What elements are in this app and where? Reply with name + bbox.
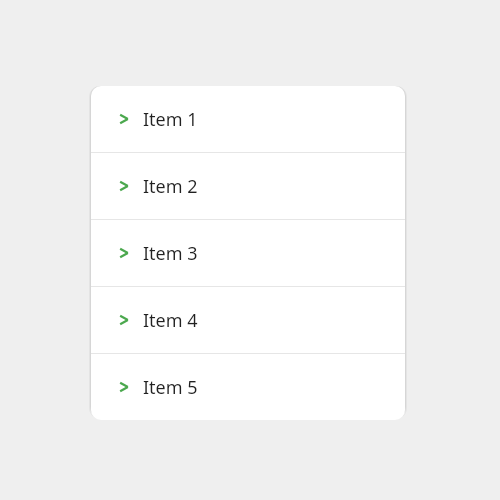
button[interactable]: Item 3: [91, 220, 405, 286]
button[interactable]: Item 4: [91, 287, 405, 353]
button[interactable]: Item 2: [91, 153, 405, 219]
button[interactable]: Item 5: [91, 354, 405, 420]
staticText: Item 1: [143, 107, 198, 132]
staticText: Item 2: [143, 174, 198, 199]
staticText: Item 5: [143, 375, 198, 400]
staticText: Item 4: [143, 308, 198, 333]
staticText: Item 3: [143, 241, 198, 266]
button[interactable]: Item 1: [91, 86, 405, 152]
